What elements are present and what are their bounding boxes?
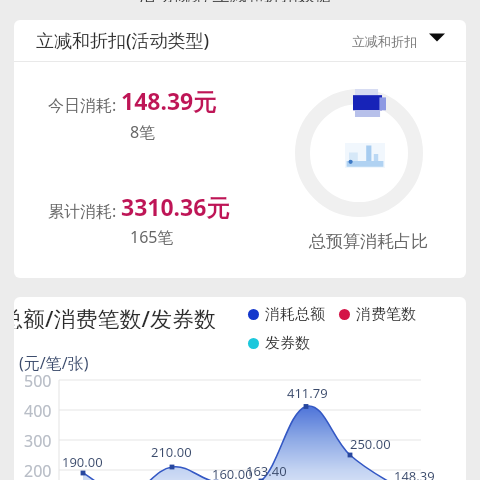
staticText: 立减和折扣(活动类型) xyxy=(36,28,210,53)
staticText: 300 xyxy=(24,430,52,452)
staticText: 411.79 xyxy=(287,384,328,402)
staticText: 8笔 xyxy=(130,121,156,143)
staticText: 200 xyxy=(24,460,52,480)
staticText: 165笔 xyxy=(130,226,174,248)
staticText: 活动概览-立减和折扣数据 xyxy=(139,0,332,2)
staticText: 250.00 xyxy=(350,435,391,453)
staticText: 发券数 xyxy=(265,334,310,353)
staticText: 消耗总额 xyxy=(265,305,325,324)
staticText: 190.00 xyxy=(62,453,103,471)
staticText: 消耗总额/消费笔数/发券数 xyxy=(14,303,216,329)
other: 展开活动类型选择 xyxy=(429,29,445,46)
staticText: 160.00 xyxy=(212,465,253,480)
staticText: 163.40 xyxy=(246,462,287,480)
staticText: 累计消耗: xyxy=(48,200,121,222)
staticText: 148.39元 xyxy=(121,85,217,116)
staticText: 500 xyxy=(24,370,52,392)
staticText: 3310.36元 xyxy=(121,191,230,222)
staticText: 210.00 xyxy=(151,443,192,461)
staticText: 总预算消耗占比 xyxy=(309,231,428,252)
staticText: 400 xyxy=(24,400,52,422)
staticText: (元/笔/张) xyxy=(19,352,89,374)
staticText: 今日消耗: xyxy=(48,94,121,116)
staticText: 消费笔数 xyxy=(356,305,416,324)
staticText: 148.39 xyxy=(394,467,435,480)
button[interactable]: 立减和折扣 xyxy=(352,20,466,61)
staticText: 立减和折扣 xyxy=(352,33,417,49)
